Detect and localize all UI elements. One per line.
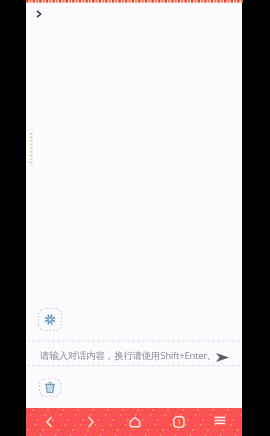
button[interactable]: 请输入对话内容，换行请使用Shift+Enter。 <box>40 349 220 365</box>
button[interactable] <box>38 308 62 331</box>
button[interactable] <box>32 6 48 22</box>
staticText: 请输入对话内容，换行请使用Shift+Enter。 <box>40 349 217 362</box>
button[interactable] <box>83 414 99 430</box>
button[interactable] <box>41 414 57 430</box>
button[interactable] <box>39 378 61 397</box>
button[interactable] <box>212 348 230 364</box>
button[interactable] <box>171 414 187 430</box>
button[interactable] <box>127 415 143 431</box>
button[interactable] <box>212 414 228 430</box>
